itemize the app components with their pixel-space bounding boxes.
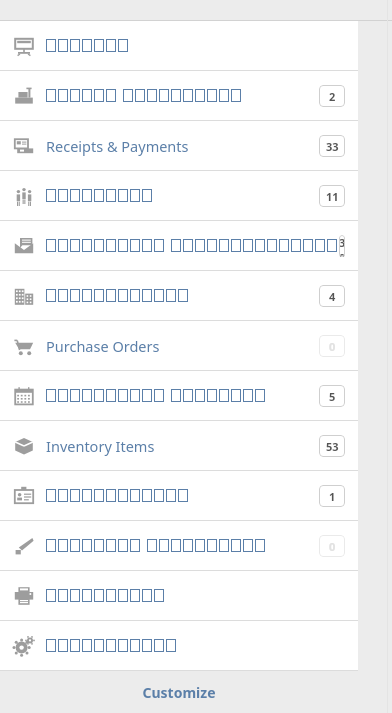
button[interactable]: [0, 21, 358, 70]
button[interactable]: 30: [0, 221, 358, 270]
button[interactable]: 5: [0, 371, 358, 420]
staticText: 1: [329, 489, 336, 504]
button[interactable]: Receipts & Payments: [0, 121, 358, 170]
button[interactable]: [0, 621, 358, 670]
button[interactable]: 4: [0, 271, 358, 320]
button[interactable]: Customize: [0, 671, 358, 713]
staticText: 4: [329, 289, 336, 304]
button[interactable]: 1: [0, 471, 358, 520]
staticText: Customize: [142, 683, 216, 702]
staticText: 11: [326, 189, 339, 204]
staticText: 0: [329, 339, 336, 354]
staticText: 53: [326, 439, 339, 454]
staticText: 0: [329, 539, 336, 554]
staticText: 30: [339, 235, 345, 257]
staticText: 5: [329, 389, 336, 404]
staticText: Inventory Items: [46, 436, 155, 456]
staticText: 2: [329, 89, 336, 104]
staticText: Purchase Orders: [46, 336, 160, 356]
staticText: 33: [326, 139, 339, 154]
staticText: Receipts & Payments: [46, 136, 189, 156]
button[interactable]: Purchase Orders: [0, 321, 358, 370]
button[interactable]: Inventory Items: [0, 421, 358, 470]
button[interactable]: 11: [0, 171, 358, 220]
button[interactable]: 0: [0, 521, 358, 570]
button[interactable]: 2: [0, 71, 358, 120]
button[interactable]: [0, 571, 358, 620]
